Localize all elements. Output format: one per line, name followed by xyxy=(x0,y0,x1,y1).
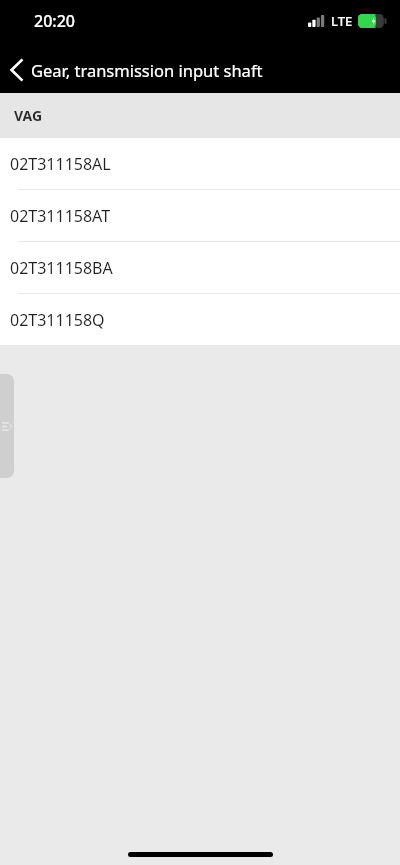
staticText: 02T311158Q xyxy=(10,309,105,331)
staticText: Gear, transmission input shaft xyxy=(31,59,263,81)
staticText: VAG xyxy=(14,106,43,125)
staticText: 02T311158AT xyxy=(10,205,111,227)
staticText: 02T311158BA xyxy=(10,257,113,279)
staticText: 20:20 xyxy=(34,10,75,32)
button[interactable]: 02T311158BA xyxy=(0,242,400,293)
staticText: LTE xyxy=(331,12,353,30)
button[interactable]: Back xyxy=(0,46,400,93)
button[interactable]: 02T311158AT xyxy=(0,190,400,241)
button[interactable]: 02T311158AL xyxy=(0,138,400,189)
button[interactable]: Open filter drawer xyxy=(0,374,14,478)
staticText: 02T311158AL xyxy=(10,153,111,175)
button[interactable]: 02T311158Q xyxy=(0,294,400,345)
